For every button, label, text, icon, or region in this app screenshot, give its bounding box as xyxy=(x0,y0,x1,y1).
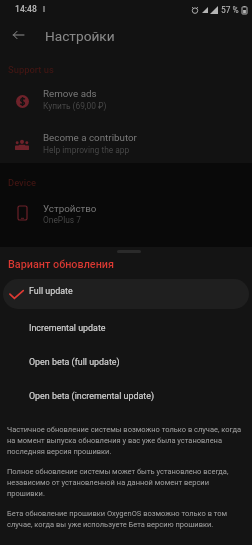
staticText: Вариант обновления xyxy=(8,258,115,271)
staticText: Device xyxy=(8,177,37,188)
button[interactable] xyxy=(3,279,249,309)
staticText: Remove ads xyxy=(43,88,97,99)
button[interactable]: Remove ads xyxy=(0,84,252,115)
button[interactable] xyxy=(3,347,249,377)
staticText: Полное обновление системы может быть уст… xyxy=(7,467,243,498)
staticText: Help improving the app xyxy=(43,145,130,155)
staticText: Бета обновление прошивки OxygenOS возмож… xyxy=(7,509,243,529)
staticText: Full update xyxy=(29,286,73,296)
staticText: 14:48 xyxy=(15,4,37,14)
staticText: Open beta (incremental update) xyxy=(29,391,155,401)
staticText: Купить (69,00 ₽) xyxy=(43,101,107,111)
staticText: Настройки xyxy=(45,28,115,44)
staticText: Support us xyxy=(8,64,54,75)
button[interactable] xyxy=(3,313,249,343)
button[interactable] xyxy=(3,380,249,410)
staticText: 57 % xyxy=(221,5,239,15)
staticText: Incremental update xyxy=(29,323,106,333)
button[interactable]: Become a contributor xyxy=(0,128,252,159)
staticText: Устройство xyxy=(43,203,97,214)
staticText: Open beta (full update) xyxy=(29,357,120,367)
staticText: Частичное обновление системы возможно то… xyxy=(7,425,243,456)
staticText: Become a contributor xyxy=(43,132,137,143)
button[interactable]: Device info xyxy=(0,198,252,229)
staticText: OnePlus 7 xyxy=(43,215,81,225)
button[interactable]: Back xyxy=(5,22,31,48)
